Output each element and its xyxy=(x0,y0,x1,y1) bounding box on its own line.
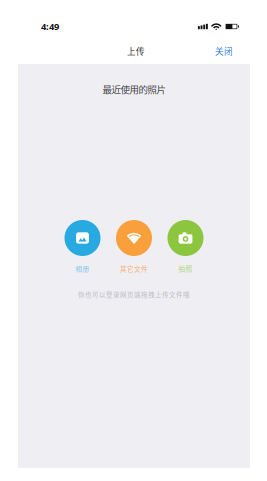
staticText: 上传 xyxy=(127,45,145,57)
staticText: 关闭 xyxy=(215,45,233,57)
staticText: 拍照 xyxy=(178,264,192,273)
staticText: 最近使用的照片 xyxy=(102,82,165,96)
staticText: 相册 xyxy=(75,264,89,273)
button[interactable]: 拍照 xyxy=(167,220,203,273)
staticText: 4:49 xyxy=(41,20,59,33)
button[interactable]: 关闭 xyxy=(209,40,239,62)
staticText: 其它文件 xyxy=(120,264,148,273)
button[interactable]: 相册 xyxy=(64,220,100,273)
button[interactable]: 其它文件 xyxy=(116,220,152,273)
staticText: 你也可以登录网页端拖拽上传文件哦 xyxy=(78,290,190,299)
